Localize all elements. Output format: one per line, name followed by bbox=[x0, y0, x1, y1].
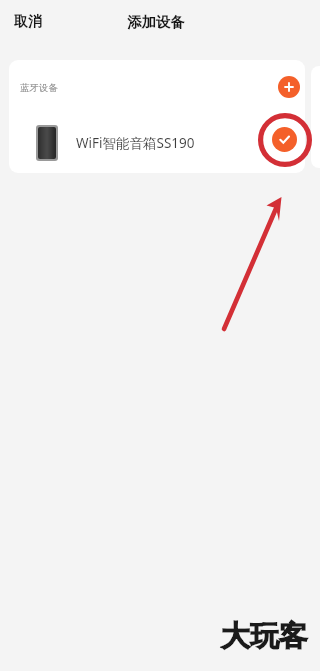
button[interactable]: WiFi智能音箱SS190 bbox=[9, 112, 305, 173]
staticText: 添加设备 bbox=[127, 13, 185, 31]
button[interactable]: 取消 bbox=[10, 9, 46, 35]
staticText: 取消 bbox=[14, 13, 42, 31]
staticText: 大玩客 bbox=[221, 618, 308, 655]
button[interactable]: Selected bbox=[272, 127, 297, 152]
button[interactable]: Add device bbox=[278, 76, 300, 98]
staticText: WiFi智能音箱SS190 bbox=[76, 134, 195, 152]
staticText: 蓝牙设备 bbox=[20, 82, 58, 94]
